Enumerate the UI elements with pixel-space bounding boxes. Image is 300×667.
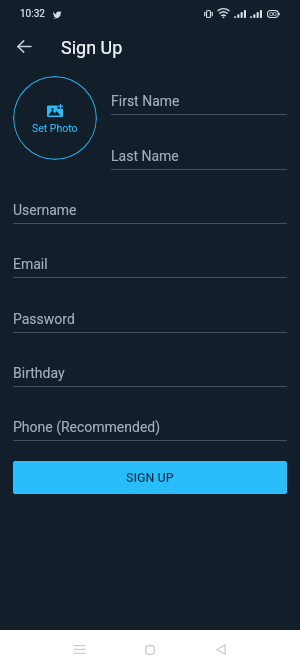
- button[interactable]: SIGN UP: [13, 461, 287, 494]
- staticText: SIGN UP: [126, 470, 174, 485]
- button[interactable]: Last Name: [111, 143, 287, 170]
- button[interactable]: Home: [128, 630, 172, 667]
- button[interactable]: Phone (Recommended): [13, 414, 287, 441]
- button[interactable]: Email: [13, 251, 287, 278]
- staticText: Birthday: [13, 365, 65, 381]
- button[interactable]: First Name: [111, 88, 287, 115]
- button[interactable]: Username: [13, 197, 287, 224]
- staticText: 10:32: [20, 8, 45, 20]
- staticText: Phone (Recommended): [13, 419, 161, 435]
- button[interactable]: Back: [9, 33, 38, 60]
- button[interactable]: Set Photo: [13, 76, 97, 160]
- staticText: Last Name: [111, 148, 179, 164]
- staticText: Set Photo: [32, 122, 78, 134]
- staticText: Email: [13, 256, 48, 272]
- staticText: Sign Up: [61, 37, 123, 58]
- button[interactable]: Back: [199, 630, 243, 667]
- button[interactable]: Recent apps: [57, 630, 101, 667]
- button[interactable]: Birthday: [13, 360, 287, 387]
- staticText: Username: [13, 202, 77, 218]
- button[interactable]: Password: [13, 306, 287, 333]
- staticText: First Name: [111, 93, 180, 109]
- staticText: Password: [13, 311, 75, 327]
